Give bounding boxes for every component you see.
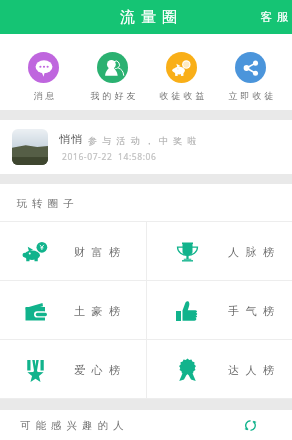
staticText: 参与活动，中奖啦 bbox=[88, 135, 202, 146]
button[interactable]: 土豪榜 bbox=[0, 281, 146, 340]
staticText: 我的好友 bbox=[89, 90, 137, 101]
staticText: 可能感兴趣的人 bbox=[20, 419, 129, 432]
button[interactable]: 客服 bbox=[248, 4, 292, 30]
button[interactable]: 我的好友 bbox=[78, 34, 147, 110]
button[interactable]: 爱心榜 bbox=[0, 340, 146, 399]
button[interactable]: 财富榜 bbox=[0, 222, 146, 281]
staticText: 财富榜 bbox=[74, 245, 127, 259]
staticText: 客服 bbox=[258, 10, 291, 24]
button[interactable]: 手气榜 bbox=[146, 281, 292, 340]
button[interactable]: 人脉榜 bbox=[146, 222, 292, 281]
staticText: 达人榜 bbox=[228, 363, 281, 377]
staticText: 手气榜 bbox=[228, 304, 281, 318]
staticText: 人脉榜 bbox=[228, 245, 281, 259]
button[interactable]: 悄悄 bbox=[0, 120, 292, 174]
staticText: 消息 bbox=[32, 90, 56, 101]
staticText: 爱心榜 bbox=[74, 363, 127, 377]
staticText: 2016-07-22 14:58:06 bbox=[62, 151, 157, 163]
button[interactable]: 消息 bbox=[9, 34, 78, 110]
staticText: 悄悄 bbox=[59, 132, 83, 146]
staticText: 流量圈 bbox=[117, 8, 180, 27]
staticText: 收徒收益 bbox=[158, 90, 206, 101]
button[interactable]: 达人榜 bbox=[146, 340, 292, 399]
staticText: 玩转圈子 bbox=[14, 197, 76, 210]
staticText: 土豪榜 bbox=[74, 304, 127, 318]
staticText: 立即收徒 bbox=[227, 90, 275, 101]
button[interactable]: 收徒收益 bbox=[147, 34, 216, 110]
button[interactable]: 立即收徒 bbox=[216, 34, 285, 110]
button[interactable]: Refresh bbox=[243, 418, 258, 433]
